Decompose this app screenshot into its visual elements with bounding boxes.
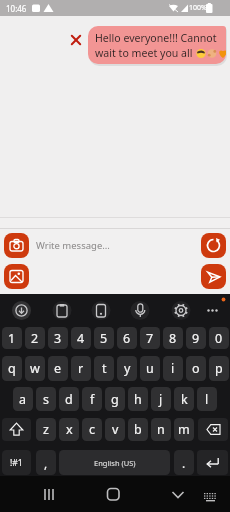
button[interactable]: x (59, 418, 79, 441)
button[interactable] (4, 264, 29, 289)
button[interactable]: !#1 (2, 450, 31, 475)
button[interactable]: Write message... (36, 233, 196, 258)
button[interactable]: 1 (2, 327, 22, 349)
button[interactable]: 3 (48, 327, 68, 349)
staticText: x (66, 421, 73, 438)
staticText: y (124, 360, 131, 377)
staticText: 4 (77, 330, 85, 347)
button[interactable]: s (36, 387, 56, 411)
button[interactable] (90, 299, 112, 321)
staticText: c (89, 421, 96, 438)
button[interactable]: y (117, 356, 137, 381)
button[interactable]: 4 (71, 327, 91, 349)
staticText: t (102, 360, 107, 377)
button[interactable] (4, 233, 29, 258)
button[interactable]: a (13, 387, 33, 411)
staticText: 8 (169, 330, 177, 347)
button[interactable]: Hello everyone!!! Cannot (88, 26, 226, 64)
staticText: n (157, 421, 165, 438)
staticText: o (192, 360, 200, 377)
button[interactable] (2, 418, 31, 441)
staticText: 5 (100, 330, 108, 347)
button[interactable] (33, 480, 65, 510)
button[interactable]: 0 (209, 327, 229, 349)
staticText: j (159, 391, 163, 408)
staticText: v (112, 421, 119, 438)
staticText: h (134, 391, 142, 408)
button[interactable] (97, 480, 129, 510)
staticText: l (205, 391, 209, 408)
button[interactable]: r (71, 356, 91, 381)
button[interactable]: q (2, 356, 22, 381)
button[interactable]: v (105, 418, 125, 441)
button[interactable]: p (209, 356, 229, 381)
staticText: e (54, 360, 62, 377)
staticText: 2 (31, 330, 39, 347)
button[interactable]: . (174, 450, 194, 475)
button[interactable]: 8 (163, 327, 183, 349)
button[interactable]: l (197, 387, 217, 411)
button[interactable]: i (163, 356, 183, 381)
staticText: p (215, 360, 223, 377)
button[interactable]: 7 (140, 327, 160, 349)
button[interactable]: h (128, 387, 148, 411)
button[interactable]: u (140, 356, 160, 381)
staticText: f (90, 391, 95, 408)
button[interactable]: k (174, 387, 194, 411)
staticText: 6 (123, 330, 131, 347)
button[interactable]: d (59, 387, 79, 411)
button[interactable]: w (25, 356, 45, 381)
staticText: d (65, 391, 73, 408)
staticText: English (US) (94, 458, 136, 468)
button[interactable] (201, 264, 226, 289)
staticText: wait to meet you all (95, 46, 196, 60)
button[interactable]: 5 (94, 327, 114, 349)
button[interactable] (129, 299, 151, 321)
staticText: 3 (54, 330, 62, 347)
button[interactable] (197, 450, 228, 475)
staticText: r (78, 360, 84, 377)
staticText: s (43, 391, 49, 408)
button[interactable]: 9 (186, 327, 206, 349)
staticText: u (146, 360, 154, 377)
button[interactable] (201, 233, 226, 258)
button[interactable] (162, 480, 194, 510)
button[interactable]: o (186, 356, 206, 381)
staticText: m (178, 421, 190, 438)
button[interactable]: b (128, 418, 148, 441)
staticText: w (30, 360, 40, 377)
button[interactable]: e (48, 356, 68, 381)
button[interactable]: t (94, 356, 114, 381)
staticText: Write message... (36, 239, 110, 252)
button[interactable]: m (174, 418, 194, 441)
staticText: a (19, 391, 27, 408)
button[interactable] (170, 299, 192, 321)
button[interactable]: English (US) (59, 450, 170, 475)
staticText: z (43, 421, 49, 438)
button[interactable] (198, 418, 228, 441)
staticText: !#1 (10, 457, 23, 469)
staticText: 1 (8, 330, 16, 347)
staticText: 100% (189, 3, 207, 13)
staticText: . (182, 455, 186, 471)
button[interactable]: 2 (25, 327, 45, 349)
button[interactable]: g (105, 387, 125, 411)
staticText: , (44, 455, 48, 471)
button[interactable] (51, 299, 73, 321)
button[interactable]: z (36, 418, 56, 441)
button[interactable] (197, 480, 225, 510)
button[interactable]: , (36, 450, 56, 475)
button[interactable]: 6 (117, 327, 137, 349)
staticText: k (181, 391, 188, 408)
staticText: 0 (215, 330, 223, 347)
staticText: 7 (146, 330, 154, 347)
staticText: 9 (192, 330, 200, 347)
button[interactable]: n (151, 418, 171, 441)
button[interactable]: j (151, 387, 171, 411)
button[interactable]: c (82, 418, 102, 441)
button[interactable]: f (82, 387, 102, 411)
button[interactable] (10, 299, 32, 321)
staticText: q (8, 360, 16, 377)
staticText: Hello everyone!!! Cannot (95, 31, 217, 45)
button[interactable] (202, 299, 224, 321)
